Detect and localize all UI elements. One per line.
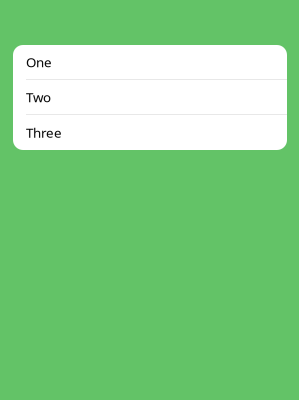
staticText: Three [26, 124, 62, 141]
button[interactable]: Two [13, 80, 287, 115]
staticText: One [26, 53, 52, 71]
button[interactable]: One [13, 45, 287, 80]
button[interactable]: Three [13, 115, 287, 150]
staticText: Two [26, 88, 51, 106]
